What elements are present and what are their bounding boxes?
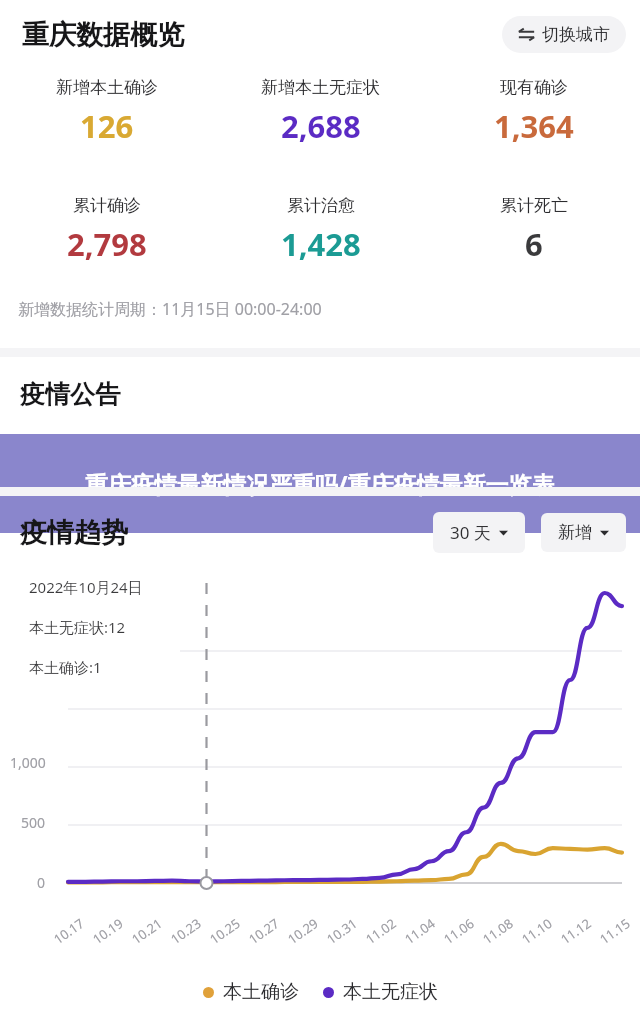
staticText: 10.25 bbox=[206, 914, 244, 948]
staticText: 重庆昨日新增本土“126+2688” bbox=[43, 432, 605, 459]
staticText: 6 bbox=[525, 223, 543, 265]
staticText: 10.23 bbox=[167, 914, 205, 948]
staticText: 11.15 bbox=[596, 914, 634, 948]
button[interactable]: 切换城市 bbox=[502, 16, 626, 53]
staticText: 疫情公告 bbox=[20, 379, 120, 410]
staticText: 1,364 bbox=[494, 105, 574, 147]
staticText: 2,798 bbox=[67, 223, 147, 265]
button[interactable]: 新增 bbox=[541, 513, 626, 552]
staticText: 10.31 bbox=[323, 914, 361, 948]
staticText: 1,428 bbox=[281, 223, 361, 265]
staticText: 126 bbox=[80, 105, 134, 147]
staticText: 11.06 bbox=[440, 914, 478, 948]
staticText: 切换城市 bbox=[542, 24, 610, 45]
staticText: 疫情趋势 bbox=[20, 516, 128, 550]
staticText: 新增 bbox=[558, 522, 592, 543]
staticText: 2022年10月24日 bbox=[29, 577, 143, 597]
staticText: 11.10 bbox=[518, 914, 556, 948]
staticText: 11.12 bbox=[557, 914, 595, 948]
staticText: 11.02 bbox=[362, 914, 400, 948]
button[interactable]: 重庆昨日新增本土“126+2688” bbox=[0, 432, 640, 459]
staticText: 重庆疫情最新情况严重吗/重庆疫情最新一览表 bbox=[85, 468, 555, 499]
staticText: 10.27 bbox=[245, 914, 283, 948]
staticText: 1,000 bbox=[10, 753, 46, 772]
button[interactable]: 30 天 bbox=[433, 512, 525, 553]
staticText: 500 bbox=[21, 813, 46, 832]
staticText: 本土确诊:1 bbox=[29, 657, 102, 677]
staticText: 0 bbox=[37, 873, 46, 892]
staticText: 新增数据统计周期：11月15日 00:00-24:00 bbox=[18, 298, 322, 320]
staticText: 新增本土确诊 bbox=[56, 77, 158, 98]
staticText: 2,688 bbox=[281, 105, 361, 147]
staticText: 本土无症状:12 bbox=[29, 617, 126, 637]
other: 切换城市 bbox=[518, 26, 535, 43]
staticText: 现有确诊 bbox=[500, 77, 568, 98]
staticText: 累计治愈 bbox=[287, 195, 355, 216]
staticText: 10.17 bbox=[50, 914, 88, 948]
staticText: 10.19 bbox=[89, 914, 127, 948]
staticText: 11.08 bbox=[479, 914, 517, 948]
staticText: 10.29 bbox=[284, 914, 322, 948]
staticText: 11.04 bbox=[401, 914, 439, 948]
staticText: 累计死亡 bbox=[500, 195, 568, 216]
staticText: 新增本土无症状 bbox=[261, 77, 380, 98]
staticText: 本土无症状 bbox=[343, 980, 438, 1004]
staticText: 本土确诊 bbox=[223, 980, 299, 1004]
staticText: 重庆数据概览 bbox=[22, 18, 184, 52]
staticText: 10.21 bbox=[128, 914, 166, 948]
staticText: 累计确诊 bbox=[73, 195, 141, 216]
staticText: 30 天 bbox=[450, 521, 491, 544]
